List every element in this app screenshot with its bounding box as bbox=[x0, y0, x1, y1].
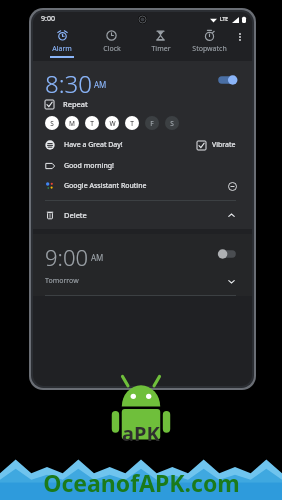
staticText: Vibrate bbox=[212, 140, 236, 150]
button[interactable]: Alarm bbox=[37, 26, 87, 58]
staticText: M bbox=[69, 119, 75, 128]
button[interactable]: Repeat bbox=[45, 99, 242, 109]
staticText: Delete bbox=[64, 210, 225, 220]
button[interactable]: Good morning! bbox=[45, 161, 242, 171]
button[interactable]: F bbox=[145, 116, 159, 130]
staticText: T bbox=[130, 119, 134, 128]
other: Collapse bbox=[225, 209, 237, 221]
staticText: T bbox=[90, 119, 94, 128]
button[interactable]: Delete bbox=[45, 209, 242, 221]
staticText: LTE bbox=[220, 16, 229, 23]
button[interactable]: Have a Great Day! bbox=[45, 140, 197, 150]
staticText: AM bbox=[94, 79, 107, 90]
staticText: 9:00 bbox=[41, 14, 55, 24]
button[interactable]: Stopwatch bbox=[185, 26, 234, 58]
staticText: Tomorrow bbox=[45, 276, 225, 286]
staticText: F bbox=[150, 119, 154, 128]
staticText: 8:30 bbox=[45, 67, 92, 93]
button[interactable]: Vibrate bbox=[197, 140, 236, 150]
button[interactable]: Clock bbox=[87, 26, 136, 58]
staticText: W bbox=[109, 119, 116, 128]
staticText: 9:00 bbox=[45, 242, 89, 266]
staticText: Stopwatch bbox=[192, 44, 227, 54]
staticText: Good morning! bbox=[64, 161, 115, 171]
button[interactable]: T bbox=[125, 116, 139, 130]
button[interactable]: Alarm on bbox=[216, 73, 238, 87]
staticText: Have a Great Day! bbox=[64, 140, 123, 150]
button[interactable]: S bbox=[165, 116, 179, 130]
button[interactable]: 8:30 bbox=[45, 67, 216, 93]
button[interactable]: T bbox=[85, 116, 99, 130]
button[interactable]: Alarm off bbox=[216, 247, 238, 261]
staticText: Clock bbox=[103, 44, 121, 54]
button[interactable]: M bbox=[65, 116, 79, 130]
staticText: S bbox=[50, 119, 54, 128]
other: Expand bbox=[225, 275, 237, 287]
staticText: Timer bbox=[151, 44, 171, 54]
button[interactable]: Timer bbox=[136, 26, 185, 58]
button[interactable]: Google Assistant Routine bbox=[45, 180, 242, 192]
other: Remove routine bbox=[226, 180, 238, 192]
button[interactable]: W bbox=[105, 116, 119, 130]
staticText: OceanofAPK.com bbox=[43, 467, 240, 498]
staticText: Repeat bbox=[63, 99, 88, 109]
button[interactable]: 9:00 bbox=[45, 242, 242, 266]
button[interactable]: Tomorrow bbox=[45, 275, 242, 287]
staticText: Alarm bbox=[52, 44, 72, 54]
staticText: AM bbox=[91, 252, 104, 263]
button[interactable]: More options bbox=[233, 30, 247, 44]
button[interactable]: S bbox=[45, 116, 59, 130]
staticText: Google Assistant Routine bbox=[64, 181, 226, 191]
staticText: aPK bbox=[122, 420, 160, 447]
staticText: S bbox=[170, 119, 174, 128]
